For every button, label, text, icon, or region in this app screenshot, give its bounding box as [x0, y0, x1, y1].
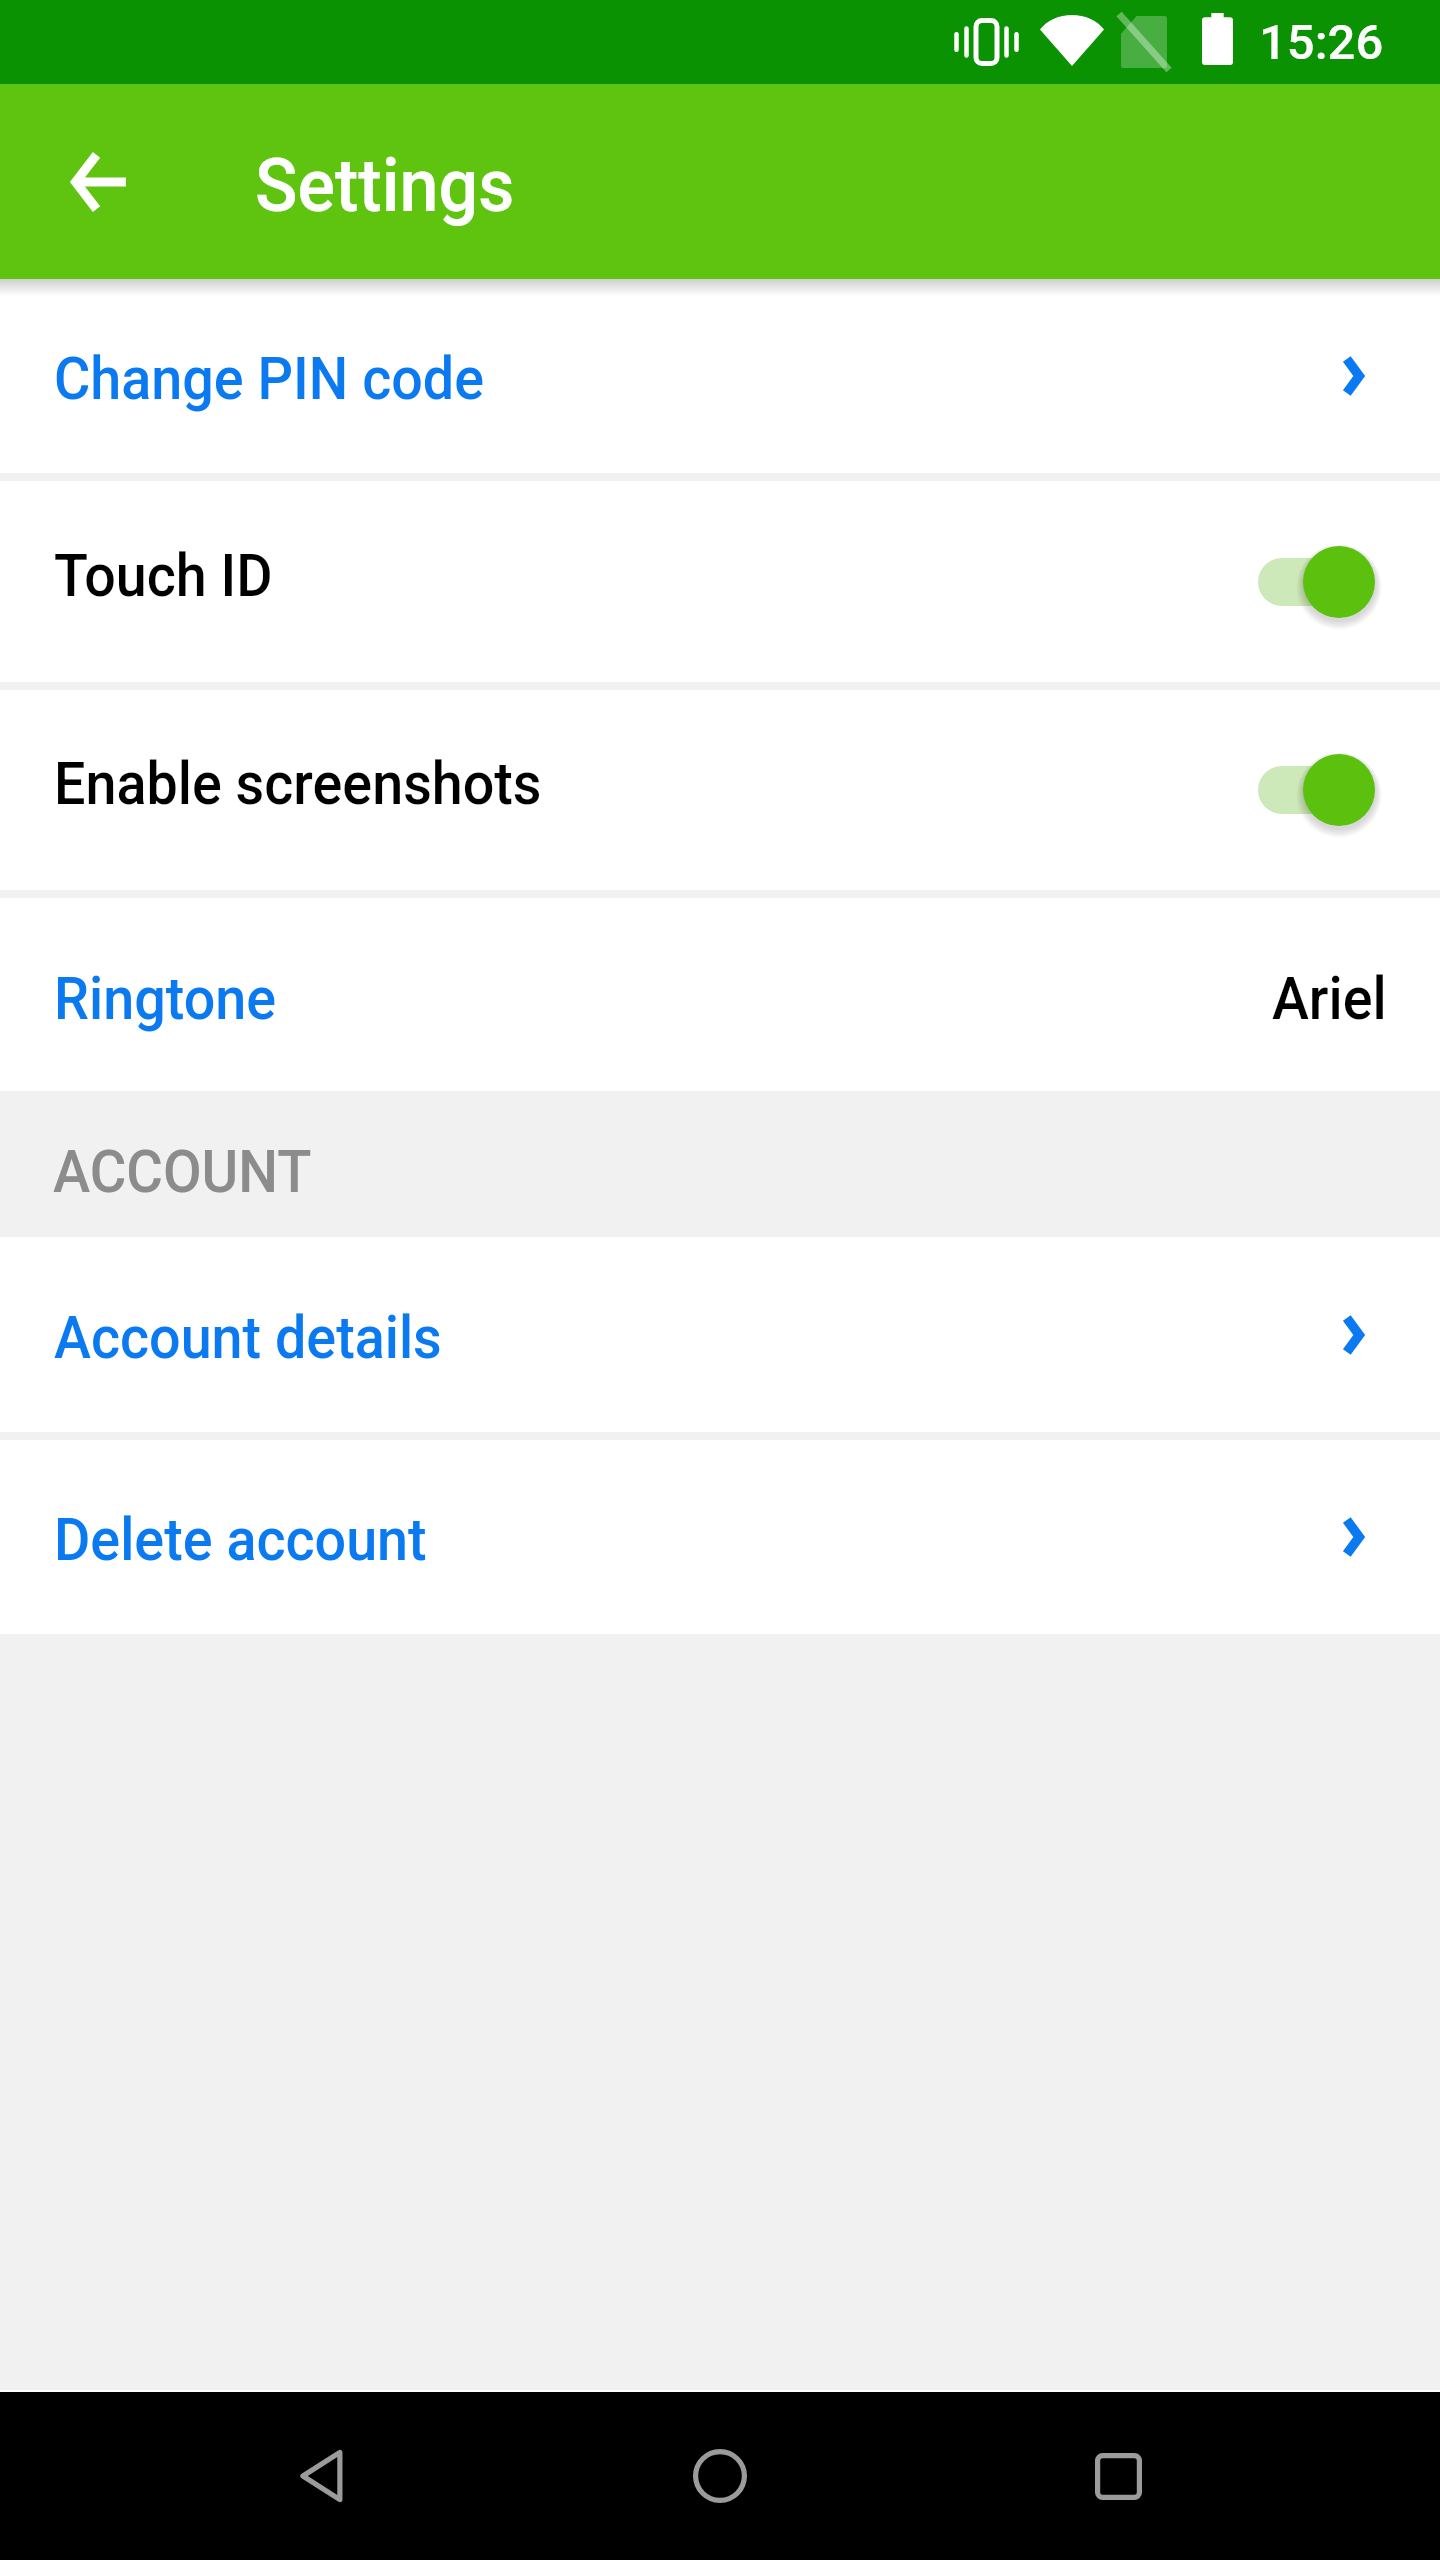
- button[interactable]: Home: [636, 2392, 804, 2560]
- staticText: Ringtone: [54, 963, 277, 1033]
- staticText: Change PIN code: [54, 343, 485, 413]
- staticText: Account details: [54, 1302, 442, 1372]
- staticText: Enable screenshots: [54, 748, 542, 818]
- staticText: Settings: [255, 142, 514, 229]
- button[interactable]: Touch ID: [0, 481, 1440, 682]
- staticText: Delete account: [54, 1504, 427, 1574]
- button[interactable]: Back: [42, 126, 154, 238]
- button[interactable]: Toggle Enable screenshots: [1258, 742, 1382, 838]
- button[interactable]: Ringtone: [0, 898, 1440, 1091]
- button[interactable]: Back: [234, 2392, 402, 2560]
- button[interactable]: Account details: [0, 1237, 1440, 1432]
- button[interactable]: Delete account: [0, 1440, 1440, 1634]
- button[interactable]: Recent apps: [1038, 2392, 1206, 2560]
- staticText: Ariel: [1272, 963, 1387, 1033]
- button[interactable]: Enable screenshots: [0, 690, 1440, 890]
- button[interactable]: Toggle Touch ID: [1258, 534, 1382, 630]
- staticText: ACCOUNT: [53, 1137, 311, 1206]
- staticText: 15:26: [1259, 14, 1383, 70]
- button[interactable]: Change PIN code: [0, 279, 1440, 473]
- staticText: Touch ID: [54, 540, 273, 610]
